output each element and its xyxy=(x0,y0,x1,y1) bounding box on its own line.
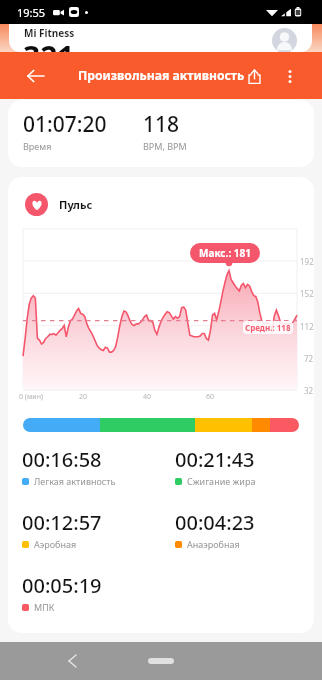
staticText: Аэробная xyxy=(34,538,77,550)
staticText: BPM, BPM xyxy=(143,140,187,152)
button[interactable]: 00:05:19 xyxy=(22,572,175,613)
button[interactable]: 00:04:23 xyxy=(175,509,255,550)
button[interactable]: Mi Fitness xyxy=(9,24,312,52)
button[interactable]: 00:12:57 xyxy=(22,509,175,550)
staticText: 20 xyxy=(79,392,88,402)
staticText: 00:21:43 xyxy=(175,446,255,473)
button[interactable]: Back xyxy=(54,643,90,679)
staticText: 00:16:58 xyxy=(22,446,102,473)
staticText: 19:55 xyxy=(17,5,46,20)
staticText: Mi Fitness xyxy=(24,26,75,40)
button[interactable] xyxy=(23,418,299,432)
staticText: 00:04:23 xyxy=(175,509,255,536)
staticText: 118 xyxy=(143,110,180,139)
staticText: 40 xyxy=(143,392,152,402)
staticText: Произвольная активность xyxy=(78,67,245,84)
staticText: Макс.: 181 xyxy=(199,246,251,260)
staticText: Время xyxy=(23,140,52,152)
button[interactable]: More options xyxy=(270,56,310,96)
staticText: 72 xyxy=(304,353,314,364)
button[interactable]: 00:21:43 xyxy=(175,446,256,487)
button[interactable]: Home xyxy=(138,648,184,674)
button[interactable]: 01:07:20 xyxy=(8,100,314,167)
staticText: 01:07:20 xyxy=(23,110,107,139)
staticText: 32 xyxy=(304,385,314,396)
staticText: Средн.: 118 xyxy=(245,322,291,333)
button[interactable]: Back xyxy=(12,53,58,99)
staticText: 00:12:57 xyxy=(22,509,102,536)
staticText: 152 xyxy=(300,288,314,299)
button[interactable]: Пульс xyxy=(25,193,93,216)
staticText: 192 xyxy=(300,256,314,267)
staticText: 0 (мин) xyxy=(19,392,44,402)
button[interactable]: 00:16:58 xyxy=(22,446,175,487)
button[interactable]: Макс.: 181 xyxy=(199,246,251,260)
staticText: МПК xyxy=(34,601,55,613)
staticText: 112 xyxy=(300,321,314,332)
staticText: Анаэробная xyxy=(187,538,240,550)
staticText: Сжигание жира xyxy=(187,475,256,487)
staticText: Легкая активность xyxy=(34,475,116,487)
button[interactable]: Share xyxy=(234,56,274,96)
staticText: Пульс xyxy=(59,197,93,212)
staticText: 321 xyxy=(23,36,75,52)
staticText: 60 xyxy=(206,392,215,402)
staticText: 00:05:19 xyxy=(22,572,102,599)
